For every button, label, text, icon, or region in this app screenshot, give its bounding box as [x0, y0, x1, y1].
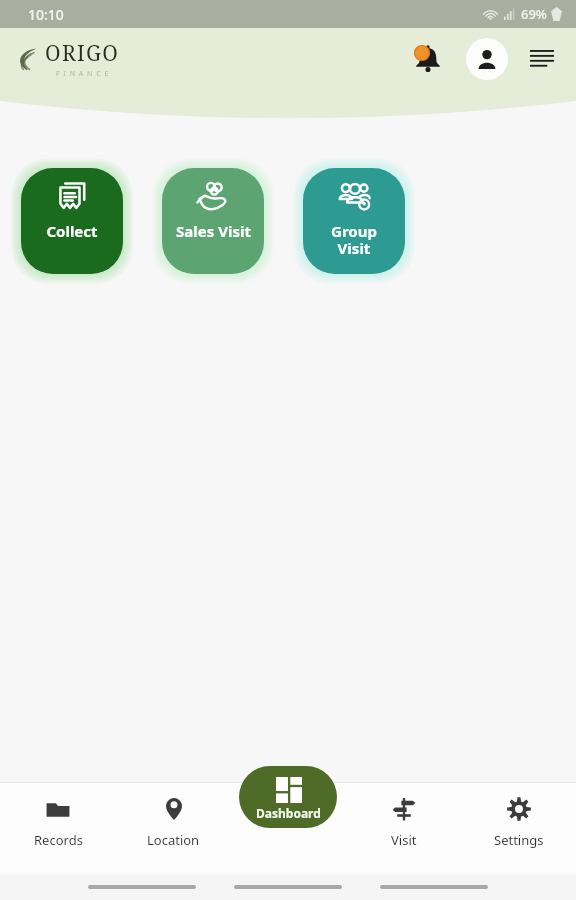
button[interactable]: Menu: [522, 39, 562, 79]
staticText: Records: [34, 831, 83, 849]
button[interactable]: Profile: [466, 38, 508, 80]
button[interactable]: Notifications: [406, 37, 450, 81]
staticText: Settings: [494, 831, 544, 849]
staticText: ORIGO: [45, 39, 120, 68]
staticText: Dashboard: [256, 805, 321, 821]
button[interactable]: Dashboard: [239, 766, 337, 828]
staticText: 69%: [521, 5, 547, 23]
staticText: 10:10: [28, 5, 64, 24]
button[interactable]: Location: [116, 790, 231, 874]
staticText: Collect: [46, 221, 98, 241]
button[interactable]: ORIGO: [16, 39, 126, 79]
staticText: Visit: [391, 831, 417, 849]
staticText: Group Visit: [331, 221, 377, 259]
button[interactable]: Records: [0, 790, 116, 874]
button[interactable]: Group Visit: [295, 160, 413, 282]
staticText: Location: [147, 831, 200, 849]
button[interactable]: Collect: [13, 160, 131, 282]
staticText: Sales Visit: [176, 221, 251, 241]
button[interactable]: Visit: [346, 790, 461, 874]
button[interactable]: Sales Visit: [154, 160, 272, 282]
button[interactable]: Settings: [461, 790, 576, 874]
staticText: F I N A N C E: [56, 69, 110, 79]
